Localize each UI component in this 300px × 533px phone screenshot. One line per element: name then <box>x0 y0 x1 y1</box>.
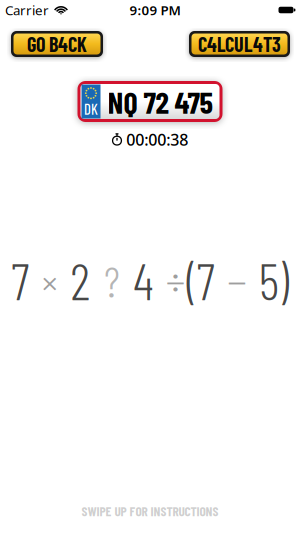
staticText: ÷ <box>166 254 185 306</box>
staticText: GO B4CK <box>27 32 87 56</box>
staticText: (7 <box>187 250 215 310</box>
staticText: SWIPE UP FOR INSTRUCTIONS <box>81 503 218 519</box>
staticText: − <box>227 254 246 306</box>
staticText: 5) <box>259 250 289 310</box>
staticText: C4LCUL4T3 <box>198 32 281 56</box>
staticText: ? <box>104 254 119 306</box>
staticText: 2 <box>70 250 90 310</box>
button[interactable]: SWIPE UP FOR INSTRUCTIONS <box>81 503 218 519</box>
staticText: NQ 72 475 <box>107 83 212 120</box>
staticText: Carrier <box>5 1 49 19</box>
staticText: DK <box>84 100 98 118</box>
staticText: 9:09 PM <box>129 1 180 19</box>
staticText: 7 <box>11 250 29 310</box>
staticText: 4 <box>133 250 153 310</box>
button[interactable]: C4LCUL4T3 <box>189 31 290 57</box>
staticText: 00:00:38 <box>126 129 188 150</box>
button[interactable]: GO B4CK <box>11 31 103 57</box>
staticText: × <box>42 254 58 306</box>
